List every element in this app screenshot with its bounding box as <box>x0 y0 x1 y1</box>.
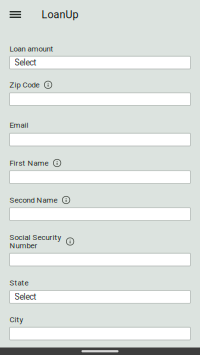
staticText: Loan amount <box>9 44 53 53</box>
staticText: LoanUp <box>42 8 79 21</box>
button[interactable] <box>9 327 190 340</box>
staticText: Second Name <box>9 195 57 205</box>
staticText: State <box>9 278 28 287</box>
staticText: Select <box>14 292 36 302</box>
staticText: Number <box>9 241 37 250</box>
staticText: Email <box>9 120 28 130</box>
button[interactable] <box>9 93 190 106</box>
button[interactable] <box>9 253 190 266</box>
button[interactable]: Menu <box>10 1 26 27</box>
button[interactable] <box>9 171 190 183</box>
button[interactable]: Select <box>9 290 190 303</box>
staticText: Social Security <box>9 233 61 242</box>
staticText: City <box>9 315 23 324</box>
staticText: Select <box>14 58 36 67</box>
button[interactable]: Select <box>9 56 190 69</box>
button[interactable] <box>9 133 190 146</box>
staticText: First Name <box>9 158 48 168</box>
staticText: Zip Code <box>9 80 39 89</box>
